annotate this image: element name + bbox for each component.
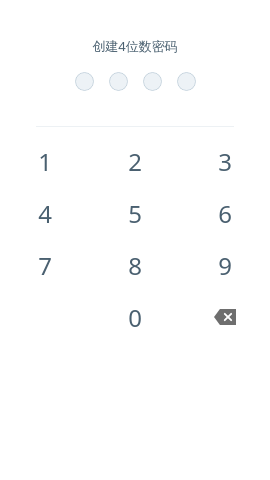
staticText: 1 [38,145,52,178]
button[interactable]: 1 [0,135,90,187]
button[interactable]: Delete [180,291,270,343]
button[interactable]: 9 [180,239,270,291]
staticText: 创建4位数密码 [0,37,270,55]
staticText: 5 [128,197,142,230]
staticText: 4 [38,197,52,230]
staticText: 2 [128,145,142,178]
staticText: 8 [128,249,142,282]
button[interactable]: 2 [90,135,180,187]
button[interactable]: 0 [90,291,180,343]
button[interactable]: 3 [180,135,270,187]
button[interactable]: 4 [0,187,90,239]
button[interactable]: 6 [180,187,270,239]
staticText: 9 [218,249,232,282]
button[interactable]: 7 [0,239,90,291]
staticText: 6 [218,197,232,230]
staticText: 0 [128,301,142,334]
button[interactable]: 5 [90,187,180,239]
staticText: 7 [38,249,52,282]
staticText: 3 [218,145,232,178]
button[interactable]: 8 [90,239,180,291]
